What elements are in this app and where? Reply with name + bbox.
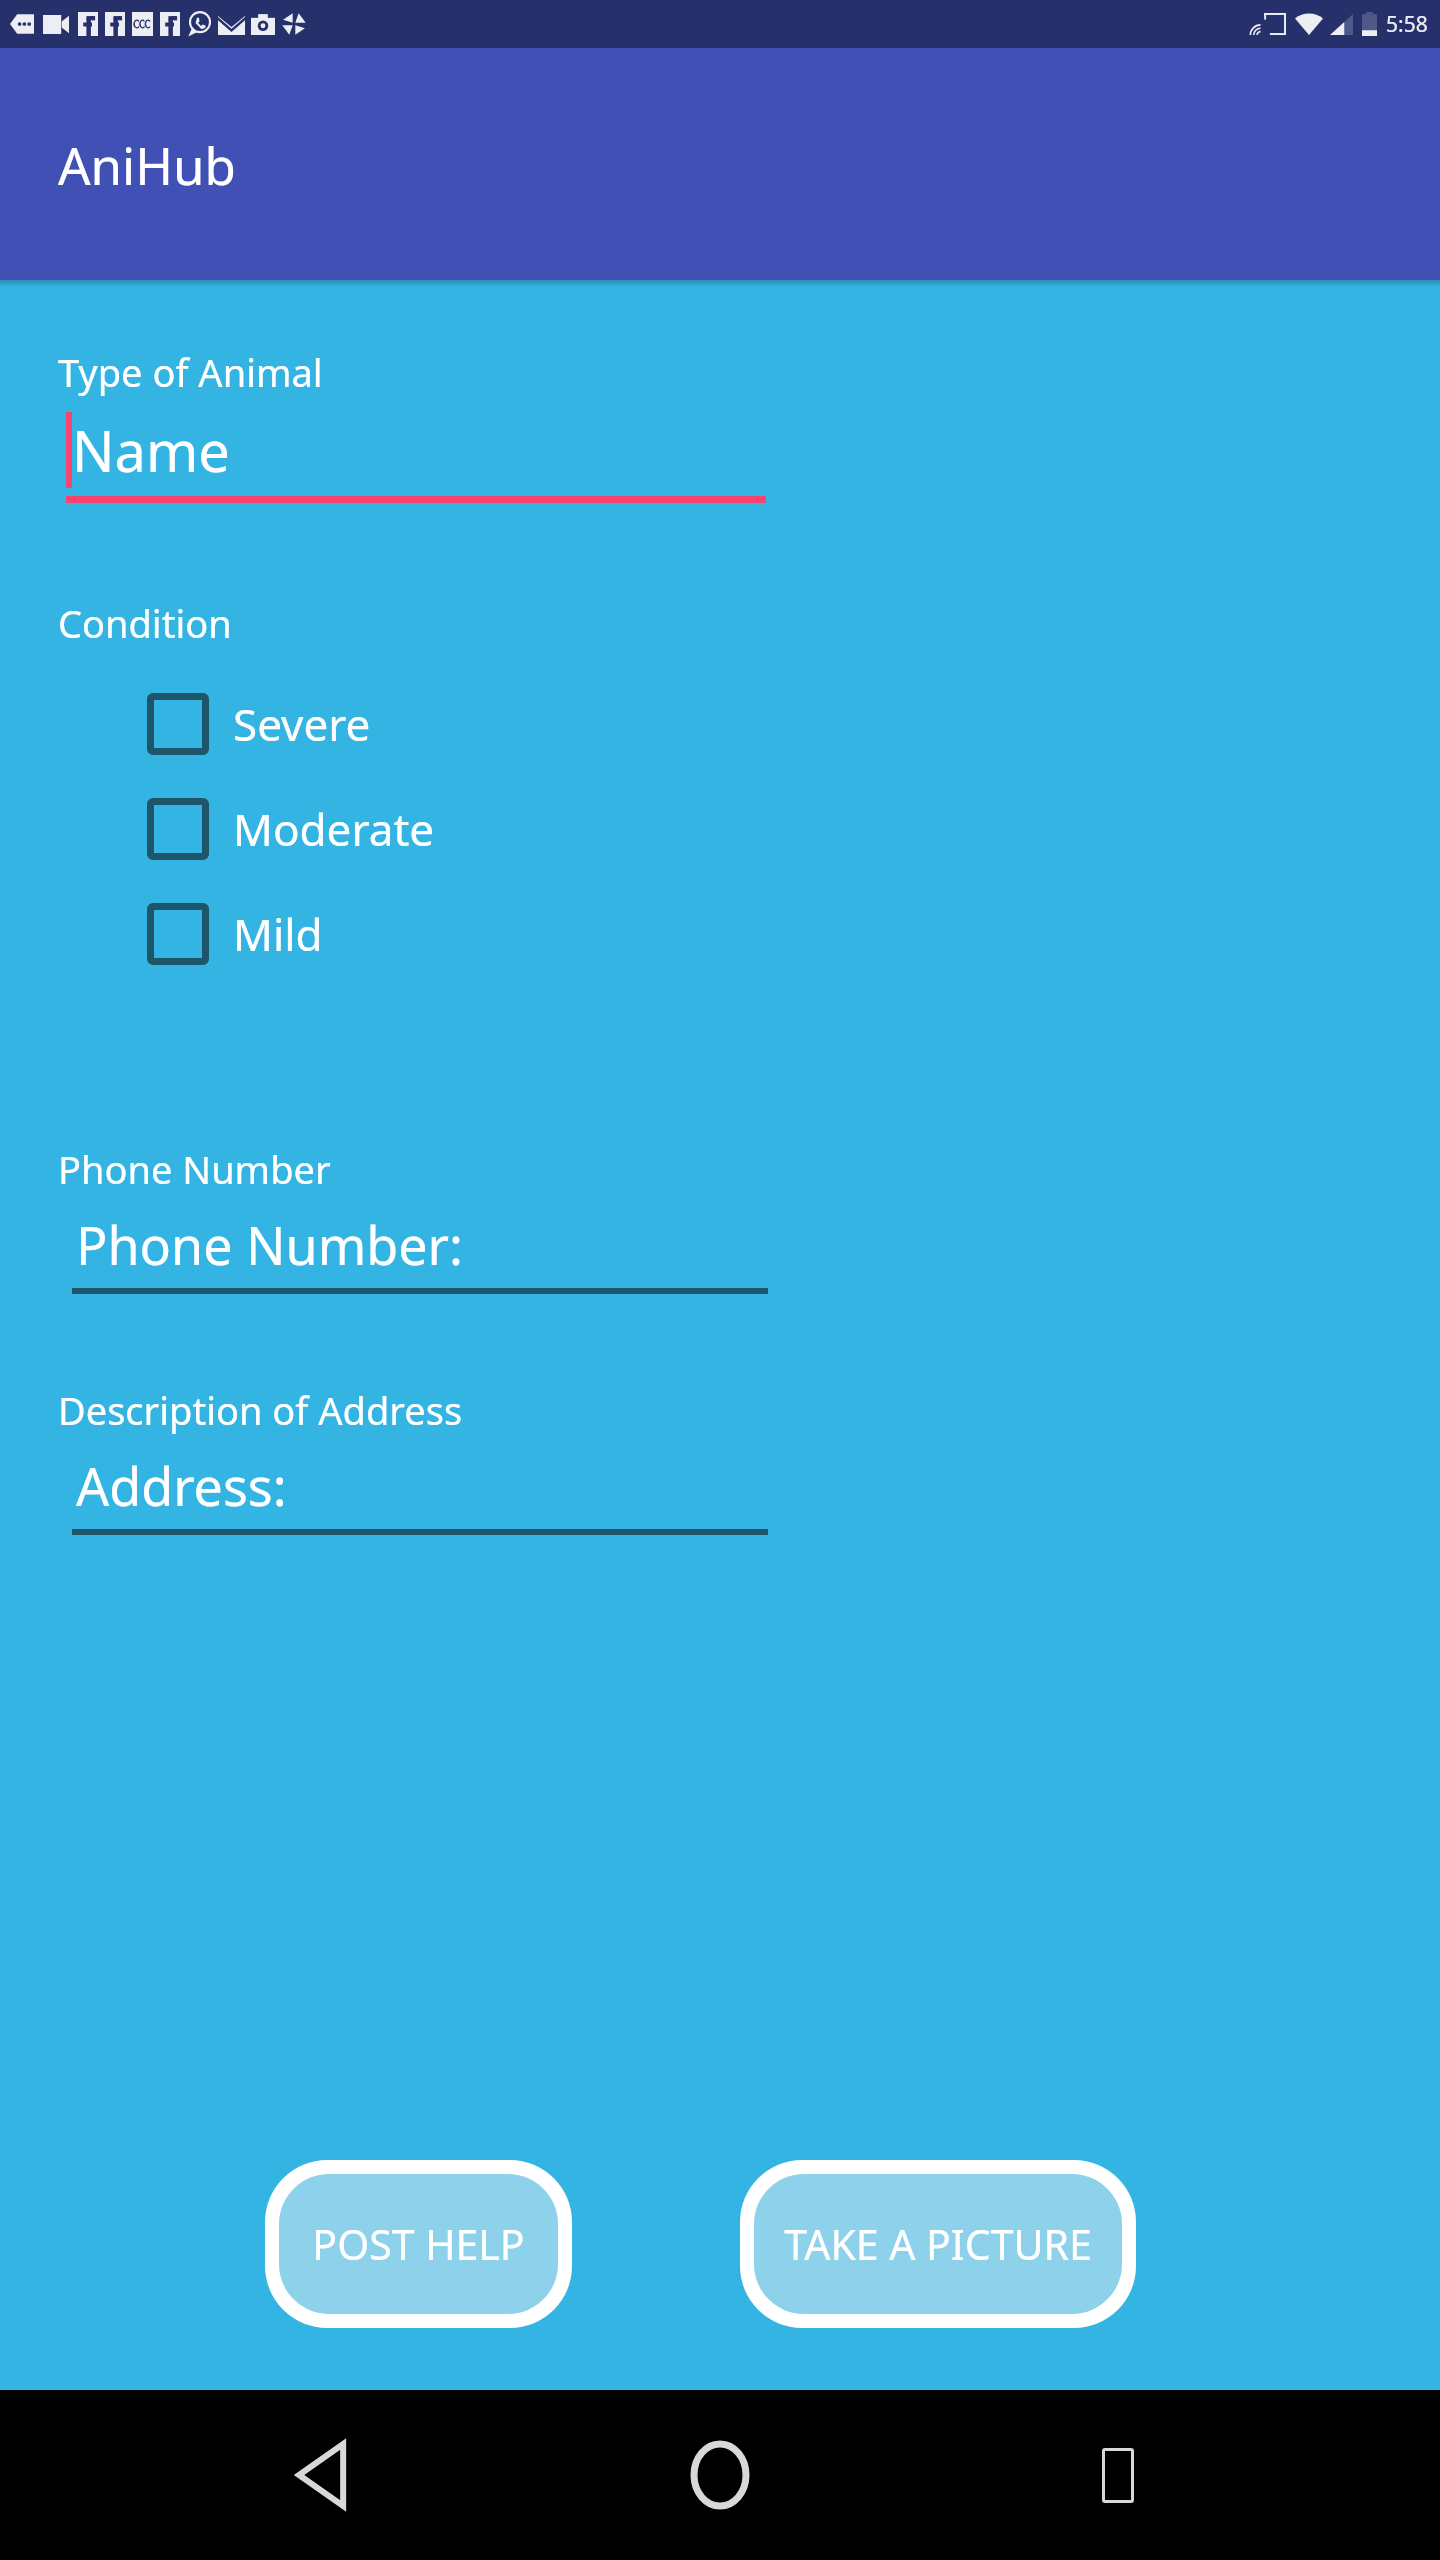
staticText: TAKE A PICTURE xyxy=(784,2216,1092,2272)
button[interactable]: Name xyxy=(66,412,766,503)
button[interactable]: Back xyxy=(248,2400,398,2550)
staticText: Phone Number xyxy=(58,1143,331,1195)
staticText: Address: xyxy=(76,1450,287,1521)
button[interactable]: Home xyxy=(645,2400,795,2550)
button[interactable]: Address: xyxy=(72,1450,768,1535)
staticText: Phone Number: xyxy=(76,1209,464,1280)
button[interactable]: Phone Number: xyxy=(72,1209,768,1294)
staticText: AniHub xyxy=(58,130,236,199)
staticText: Name xyxy=(72,412,230,488)
staticText: 5:58 xyxy=(1386,10,1428,39)
staticText: Condition xyxy=(58,597,232,649)
button[interactable]: Severe xyxy=(147,675,371,773)
button[interactable]: POST HELP xyxy=(279,2174,558,2314)
button[interactable]: Mild xyxy=(147,885,323,983)
staticText: Severe xyxy=(233,694,371,754)
staticText: Type of Animal xyxy=(58,346,323,398)
staticText: POST HELP xyxy=(312,2216,525,2272)
button[interactable]: TAKE A PICTURE xyxy=(754,2174,1122,2314)
staticText: Mild xyxy=(233,904,323,964)
button[interactable]: Moderate xyxy=(147,780,435,878)
button[interactable]: Recent apps xyxy=(1043,2400,1193,2550)
staticText: Moderate xyxy=(233,799,435,859)
staticText: Description of Address xyxy=(58,1384,463,1436)
